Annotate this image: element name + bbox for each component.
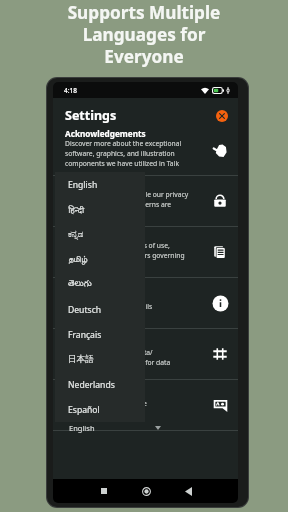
- button[interactable]: Privacy Policy: [53, 176, 238, 227]
- staticText: Find the app version details: [65, 302, 153, 311]
- button[interactable]: App Language: [53, 380, 238, 431]
- staticText: தமிழ்: [68, 255, 88, 264]
- staticText: Supports Multiple Languages for Everyone: [0, 1, 288, 68]
- staticText: Manage Data: [65, 337, 120, 348]
- button[interactable]: Terms of Use: [53, 227, 238, 278]
- staticText: Discover more about the exceptional soft…: [65, 139, 182, 168]
- button[interactable]: English: [55, 172, 145, 197]
- staticText: हिन्दी: [68, 204, 85, 216]
- staticText: Français: [68, 329, 102, 341]
- staticText: Read about how we handle our privacy pol…: [65, 190, 189, 219]
- staticText: English: [69, 423, 95, 433]
- staticText: Deutsch: [68, 304, 102, 316]
- button[interactable]: Manage Data: [53, 329, 238, 380]
- button[interactable]: తెలుగు: [55, 272, 145, 297]
- button[interactable]: Close settings: [216, 110, 228, 122]
- staticText: ಕನ್ನಡ: [68, 230, 84, 239]
- staticText: English: [68, 179, 98, 191]
- staticText: Control your personal data/ preferences …: [65, 348, 171, 367]
- button[interactable]: ಕನ್ನಡ: [55, 222, 145, 247]
- button[interactable]: About: [53, 278, 238, 329]
- staticText: Nederlands: [68, 379, 115, 391]
- staticText: 4:18: [64, 86, 77, 95]
- button[interactable]: Back: [176, 479, 200, 503]
- staticText: తెలుగు: [68, 279, 92, 291]
- staticText: Change the app language App will restart…: [65, 399, 147, 418]
- button[interactable]: English: [55, 419, 165, 436]
- button[interactable]: Français: [55, 322, 145, 347]
- staticText: 日本語: [68, 354, 94, 365]
- staticText: Acknowledgements: [65, 128, 146, 139]
- button[interactable]: 日本語: [55, 347, 145, 372]
- staticText: Understand the full terms of use, condit…: [65, 241, 185, 270]
- staticText: Español: [68, 404, 100, 416]
- staticText: Privacy Policy: [65, 179, 121, 190]
- staticText: Terms of Use: [65, 230, 118, 241]
- button[interactable]: Deutsch: [55, 297, 145, 322]
- button[interactable]: Nederlands: [55, 372, 145, 397]
- button[interactable]: Recents: [92, 479, 116, 503]
- staticText: Settings: [65, 107, 117, 124]
- button[interactable]: हिन्दी: [55, 197, 145, 222]
- button[interactable]: தமிழ்: [55, 247, 145, 272]
- button[interactable]: Home: [134, 479, 158, 503]
- button[interactable]: Español: [55, 397, 145, 422]
- button[interactable]: Acknowledgements: [53, 125, 238, 176]
